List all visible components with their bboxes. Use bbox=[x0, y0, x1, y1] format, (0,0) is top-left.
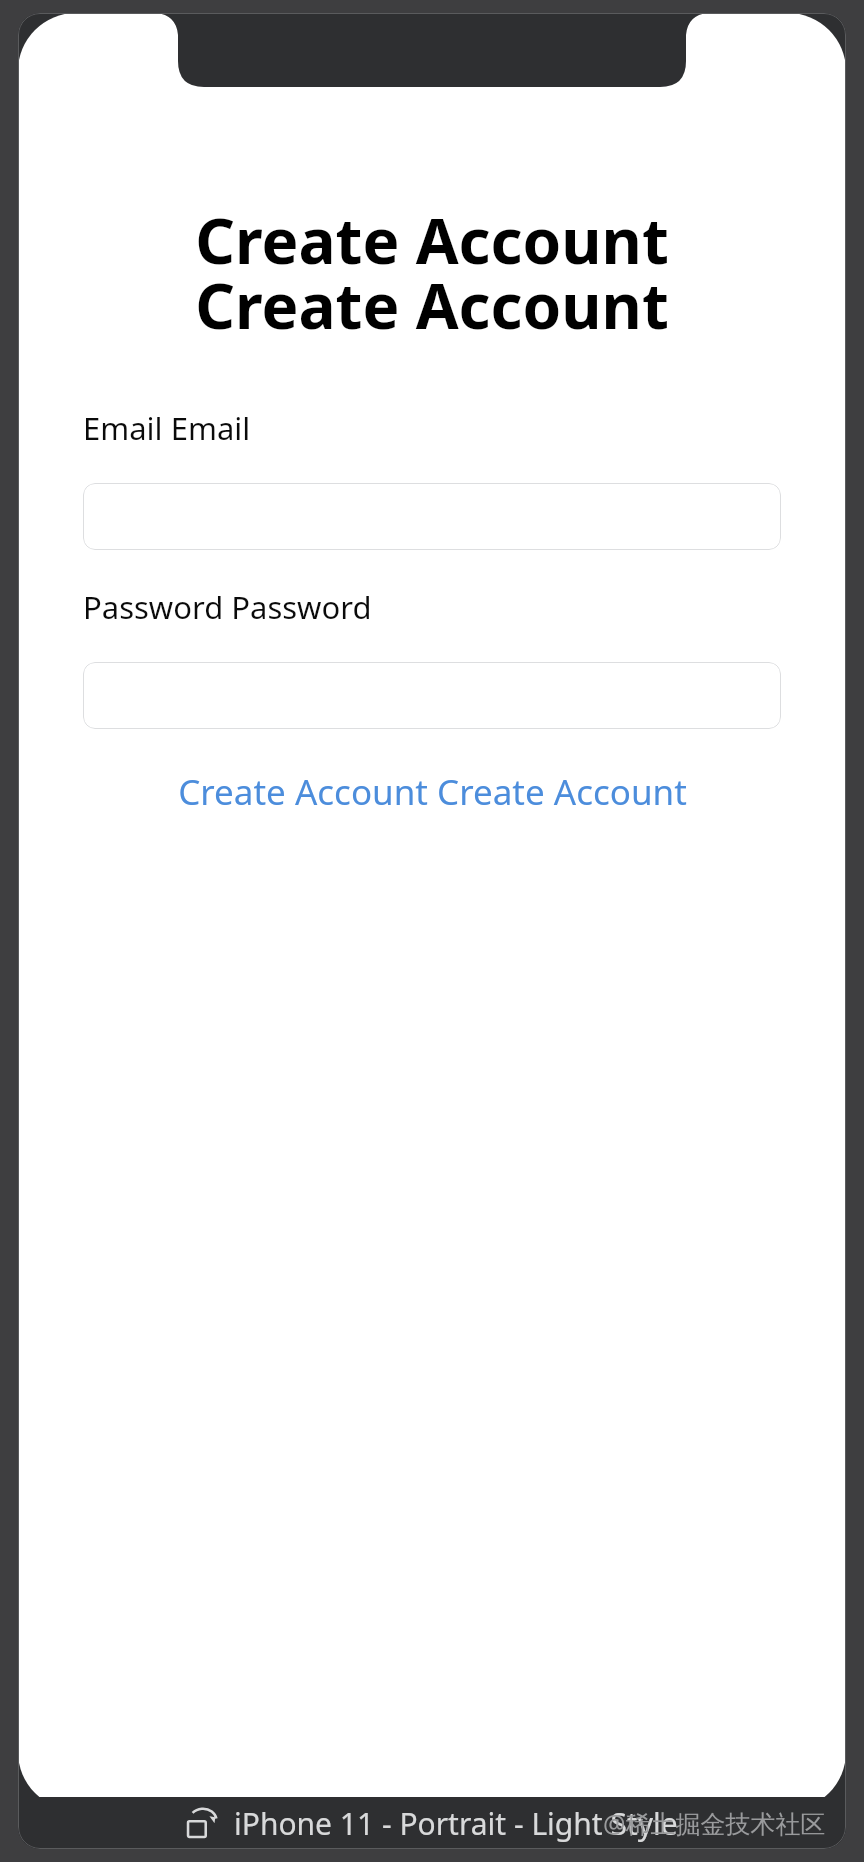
button[interactable] bbox=[83, 662, 781, 729]
staticText: iPhone 11 - Portrait - Light Style bbox=[234, 1803, 678, 1844]
staticText: Password Password bbox=[83, 586, 372, 628]
staticText: Email Email bbox=[83, 407, 251, 449]
staticText: @稀土掘金技术社区 bbox=[603, 1806, 826, 1840]
button[interactable]: Rotate device bbox=[186, 1807, 220, 1841]
button[interactable] bbox=[83, 483, 781, 550]
staticText: Create Account Create Account bbox=[18, 198, 846, 347]
staticText: Create Account Create Account bbox=[178, 768, 687, 816]
button[interactable]: Create Account Create Account bbox=[18, 757, 846, 827]
